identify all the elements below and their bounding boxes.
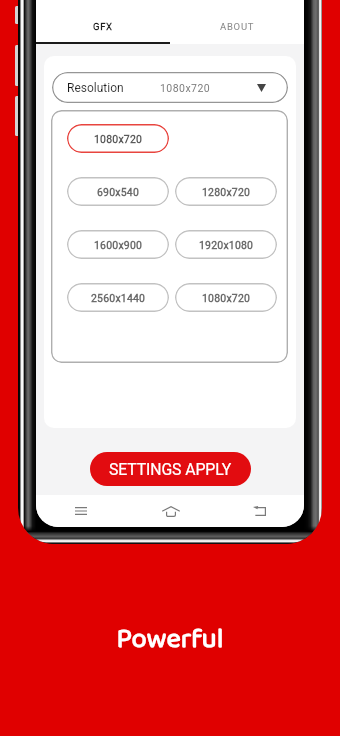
button[interactable]: 690x540 (67, 177, 169, 206)
button[interactable]: 1280x720 (175, 177, 277, 206)
button[interactable]: 1600x900 (67, 230, 169, 259)
staticText: Powerful (0, 617, 340, 661)
button[interactable]: 1080x720 (175, 283, 277, 312)
staticText: 1080x720 (94, 133, 143, 145)
staticText: Resolution (67, 81, 124, 95)
button[interactable]: Back (215, 495, 304, 527)
staticText: 1600x900 (94, 239, 143, 251)
staticText: 1920x1080 (199, 239, 254, 251)
staticText: 690x540 (97, 186, 140, 198)
button[interactable]: ABOUT (170, 0, 304, 44)
button[interactable]: Home (126, 495, 215, 527)
staticText: ABOUT (220, 21, 255, 32)
staticText: 2560x1440 (91, 292, 146, 304)
button[interactable]: Resolution (52, 72, 288, 103)
button[interactable]: SETTINGS APPLY (90, 452, 251, 486)
staticText: 1080x720 (202, 292, 251, 304)
staticText: 1280x720 (202, 186, 251, 198)
button[interactable]: GFX (36, 0, 170, 44)
button[interactable]: 2560x1440 (67, 283, 169, 312)
staticText: 1080x720 (160, 82, 211, 94)
button[interactable]: 1920x1080 (175, 230, 277, 259)
button[interactable]: Recents (36, 495, 126, 527)
staticText: SETTINGS APPLY (109, 460, 232, 479)
button[interactable]: 1080x720 (67, 124, 169, 153)
staticText: GFX (93, 21, 113, 32)
